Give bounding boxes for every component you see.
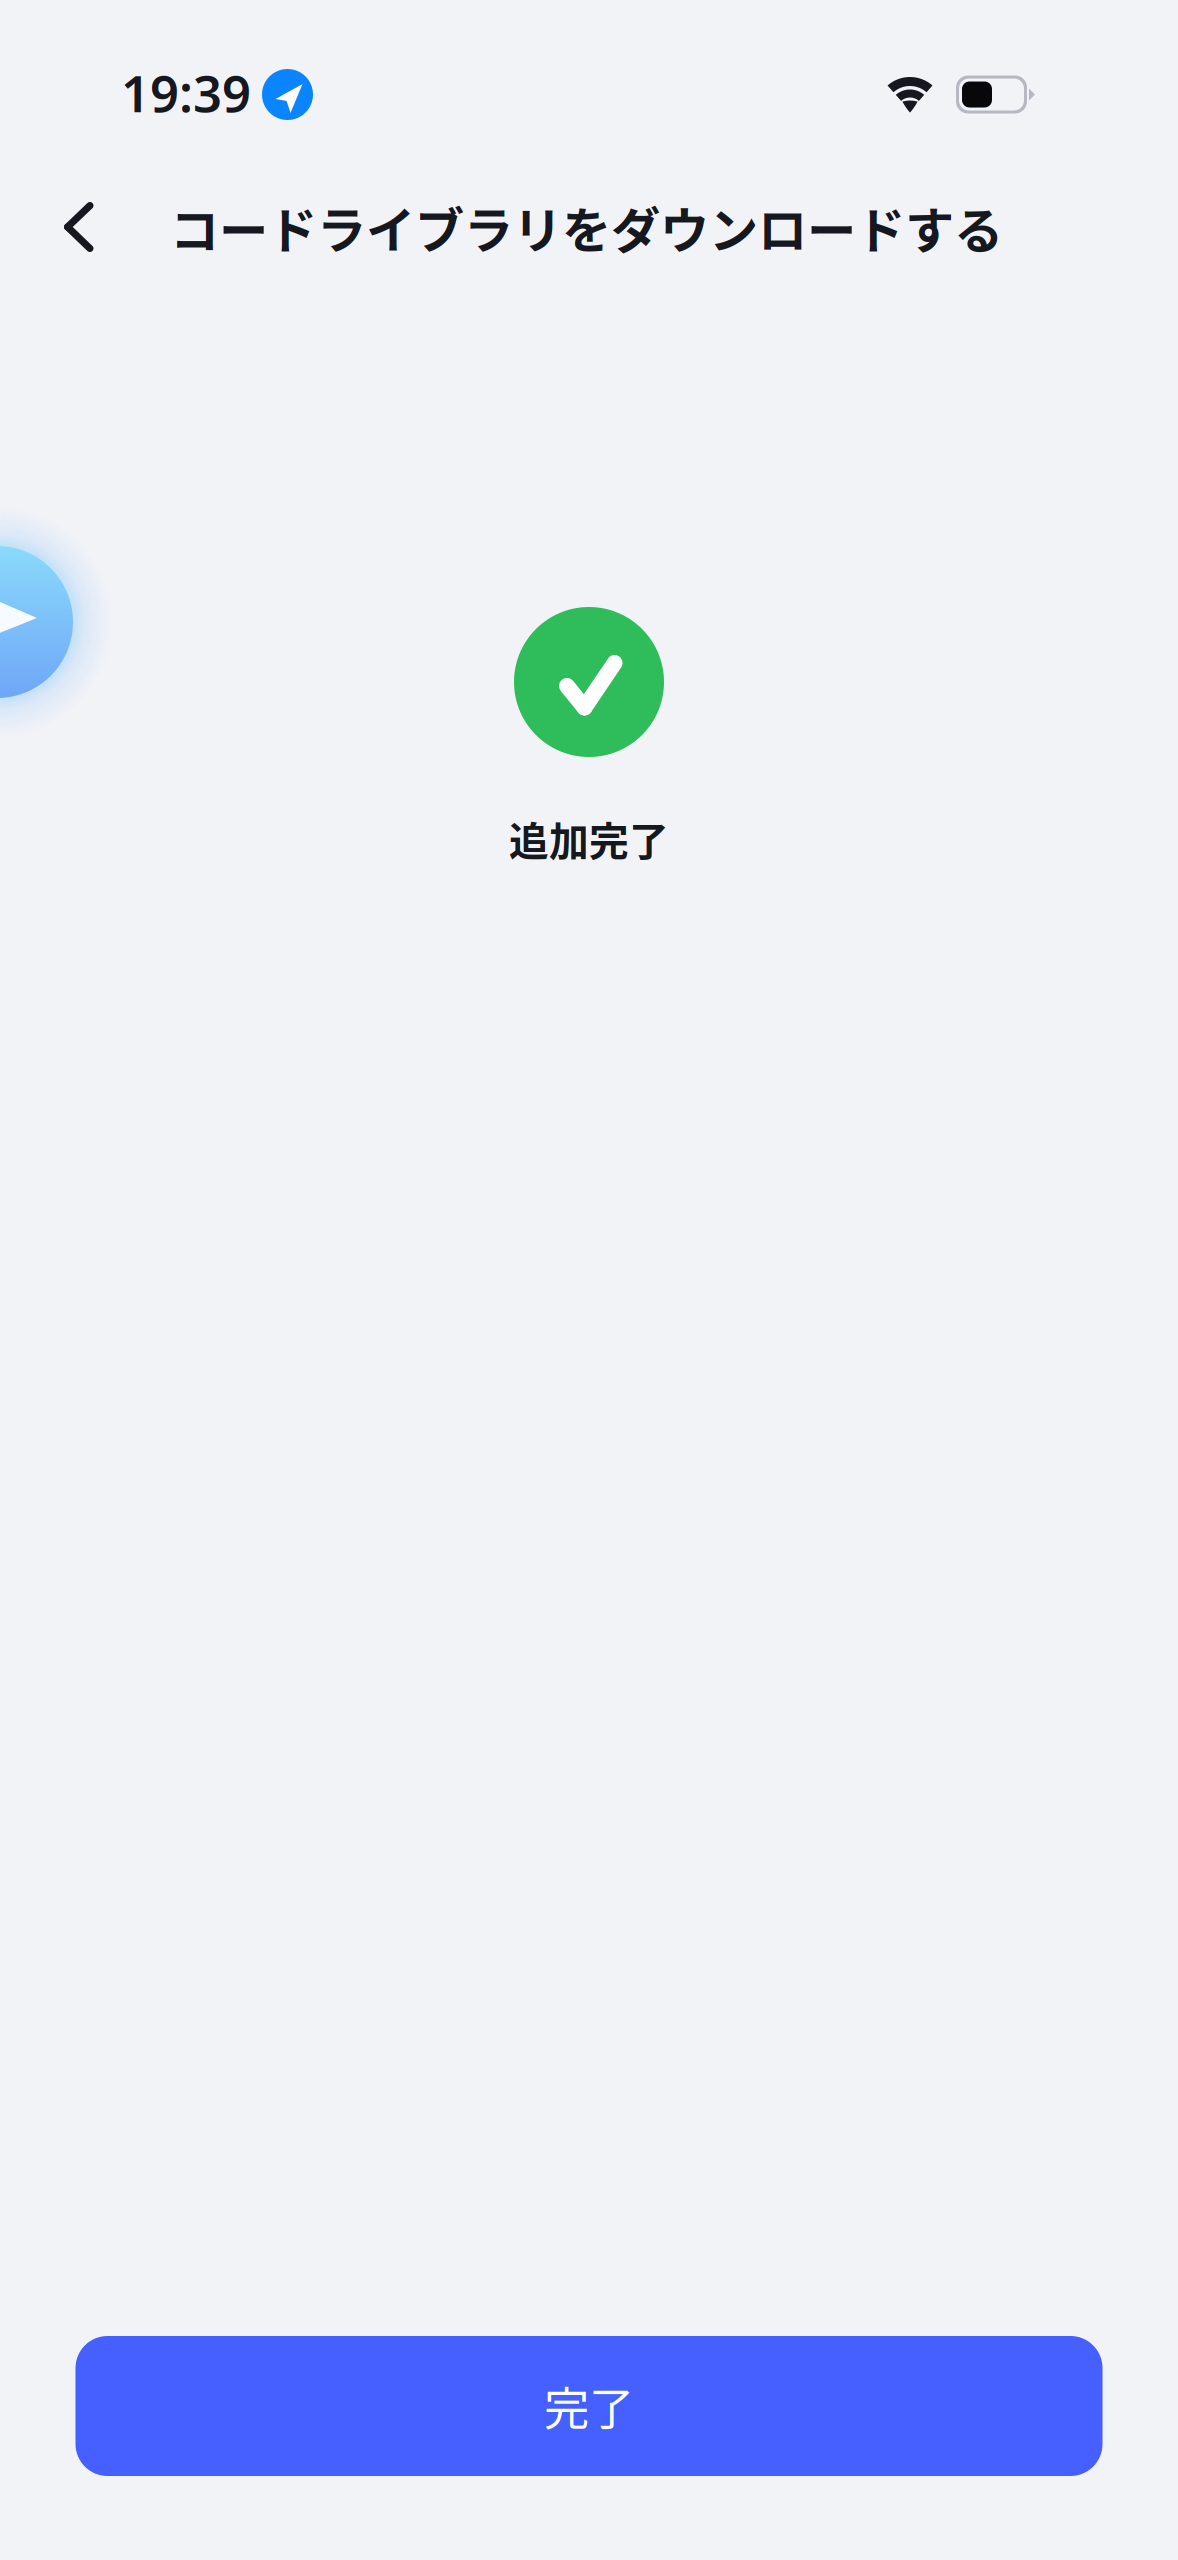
staticText: 完了 [544,2373,634,2439]
staticText: 追加完了 [509,810,669,867]
staticText: 19:39 [121,59,251,126]
button[interactable]: Back [64,171,170,283]
button[interactable]: 完了 [75,2336,1102,2476]
staticText: コードライブラリをダウンロードする [170,191,1003,263]
